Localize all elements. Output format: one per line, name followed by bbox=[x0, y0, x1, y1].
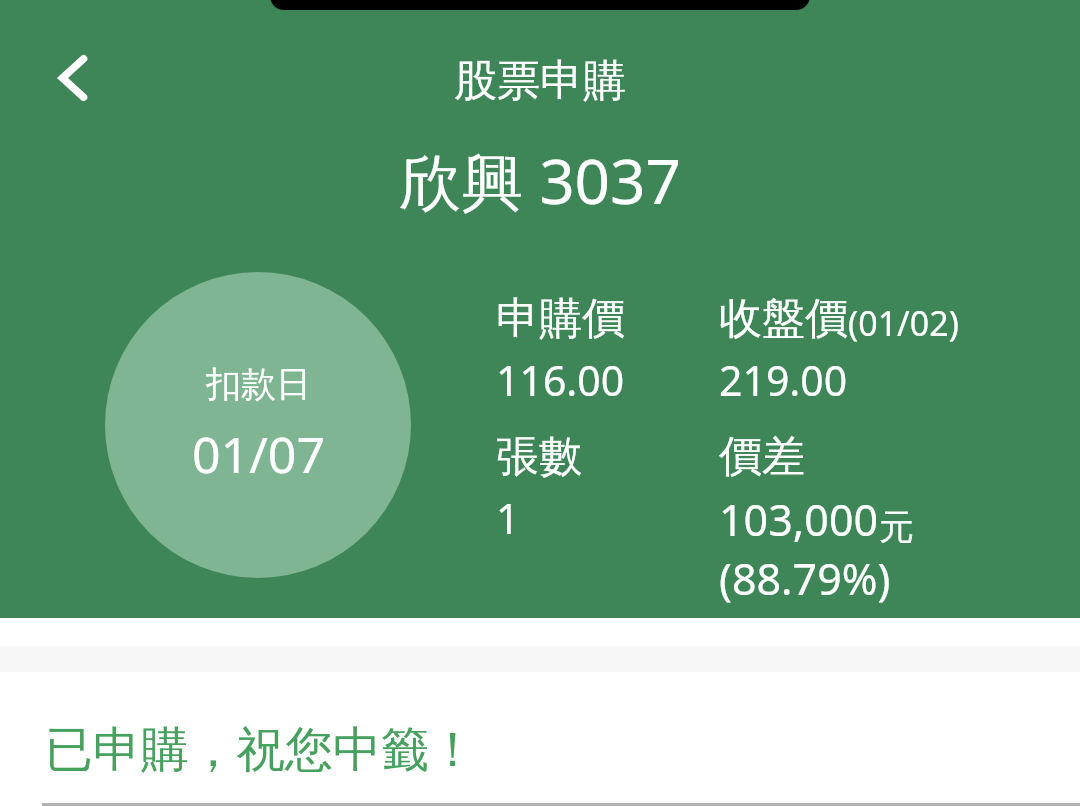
staticText: 欣興 3037 bbox=[0, 138, 1080, 223]
staticText: (88.79%) bbox=[719, 549, 891, 608]
button[interactable]: 已申購，祝您中籤！ bbox=[0, 672, 1080, 806]
staticText: 1 bbox=[496, 490, 520, 546]
staticText: 扣款日 bbox=[206, 362, 311, 406]
staticText: 張數 bbox=[496, 430, 582, 484]
staticText: 01/07 bbox=[192, 420, 325, 488]
button[interactable]: Back bbox=[34, 38, 114, 118]
staticText: 價差 bbox=[719, 430, 805, 484]
staticText: 219.00 bbox=[719, 352, 848, 408]
staticText: 116.00 bbox=[496, 352, 625, 408]
staticText: 收盤價 bbox=[719, 292, 848, 346]
staticText: 103,000 bbox=[719, 490, 879, 549]
staticText: 元 bbox=[879, 505, 914, 549]
staticText: 股票申購 bbox=[0, 54, 1080, 108]
button[interactable]: 扣款日 bbox=[105, 272, 411, 578]
staticText: 已申購，祝您中籤！ bbox=[45, 720, 477, 780]
staticText: 申購價 bbox=[496, 292, 625, 346]
staticText: (01/02) bbox=[848, 300, 959, 346]
